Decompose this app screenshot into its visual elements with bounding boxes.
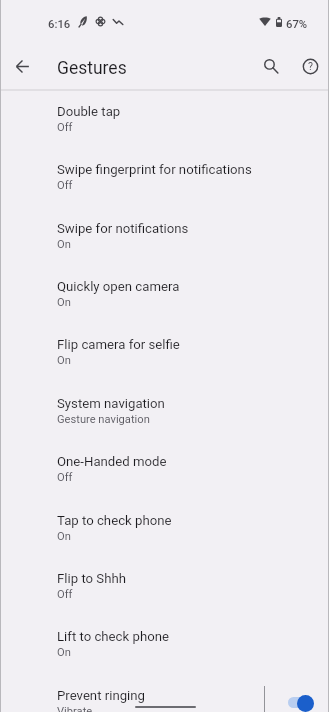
staticText: Off — [57, 588, 73, 601]
button[interactable]: Prevent ringing — [0, 682, 329, 712]
staticText: Flip to Shhh — [57, 571, 126, 586]
staticText: Prevent ringing — [57, 688, 145, 703]
staticText: Off — [57, 471, 73, 484]
staticText: ? — [308, 60, 313, 72]
button[interactable]: Lift to check phone — [0, 623, 329, 681]
staticText: Double tap — [57, 104, 121, 119]
staticText: Gesture navigation — [57, 413, 150, 426]
staticText: System navigation — [57, 396, 165, 411]
staticText: Vibrate — [57, 705, 93, 712]
staticText: Swipe fingerprint for notifications — [57, 162, 252, 177]
staticText: On — [57, 238, 71, 251]
staticText: One-Handed mode — [57, 454, 167, 469]
staticText: Flip camera for selfie — [57, 337, 180, 352]
button[interactable]: Swipe for notifications — [0, 215, 329, 273]
button[interactable] — [288, 697, 314, 708]
staticText: Tap to check phone — [57, 513, 172, 528]
staticText: 67% — [286, 18, 308, 31]
button[interactable]: Back — [9, 53, 35, 79]
button[interactable]: Flip to Shhh — [0, 565, 329, 623]
staticText: Gestures — [57, 58, 127, 79]
staticText: Off — [57, 179, 73, 192]
staticText: On — [57, 354, 71, 367]
button[interactable]: Swipe fingerprint for notifications — [0, 156, 329, 214]
staticText: 6:16 — [48, 18, 71, 31]
button[interactable]: Flip camera for selfie — [0, 331, 329, 389]
staticText: On — [57, 530, 71, 543]
button[interactable]: One-Handed mode — [0, 448, 329, 506]
button[interactable]: Search — [258, 53, 284, 79]
button[interactable]: Tap to check phone — [0, 507, 329, 565]
staticText: Lift to check phone — [57, 629, 169, 644]
staticText: Swipe for notifications — [57, 221, 189, 236]
staticText: On — [57, 296, 71, 309]
button[interactable]: Quickly open camera — [0, 273, 329, 331]
button[interactable]: Help — [297, 53, 323, 79]
button[interactable]: Double tap — [0, 98, 329, 156]
staticText: Off — [57, 121, 73, 134]
button[interactable]: System navigation — [0, 390, 329, 448]
staticText: Quickly open camera — [57, 279, 180, 294]
staticText: On — [57, 646, 71, 659]
